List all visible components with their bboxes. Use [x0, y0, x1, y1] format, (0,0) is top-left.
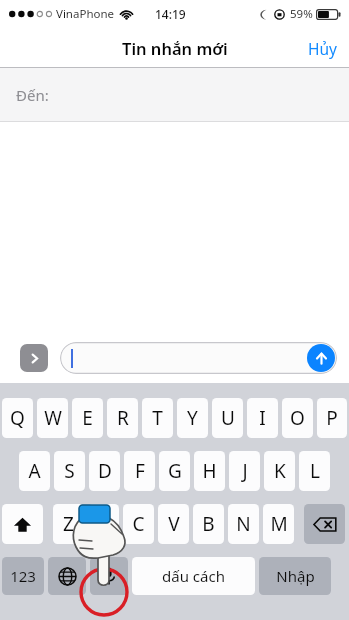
button[interactable]: I [247, 398, 278, 438]
button[interactable]: S [54, 451, 85, 491]
staticText: Đến: [16, 85, 49, 105]
button[interactable]: Shift [2, 504, 43, 544]
button[interactable]: Backspace [304, 504, 345, 544]
button[interactable]: W [37, 398, 68, 438]
button[interactable]: X [88, 504, 119, 544]
staticText: F [135, 458, 145, 484]
staticText: T [152, 405, 163, 431]
staticText: VinaPhone [56, 6, 115, 22]
staticText: 123 [10, 566, 36, 586]
staticText: W [44, 405, 62, 431]
staticText: Nhập [276, 566, 315, 586]
button[interactable]: G [159, 451, 190, 491]
staticText: dấu cách [162, 566, 225, 586]
staticText: Z [63, 511, 74, 537]
staticText: X [98, 511, 110, 537]
button[interactable]: C [123, 504, 154, 544]
button[interactable]: V [158, 504, 189, 544]
button[interactable]: Q [2, 398, 33, 438]
staticText: Tin nhắn mới [122, 37, 228, 59]
staticText: M [270, 511, 288, 537]
button[interactable]: B [193, 504, 224, 544]
staticText: R [117, 405, 129, 431]
button[interactable]: T [142, 398, 173, 438]
staticText: Q [10, 405, 25, 431]
button[interactable]: F [124, 451, 155, 491]
staticText: L [310, 458, 320, 484]
staticText: 59% [290, 6, 313, 22]
button[interactable]: J [229, 451, 260, 491]
button[interactable]: M [263, 504, 294, 544]
button[interactable]: K [264, 451, 295, 491]
staticText: Y [187, 405, 198, 431]
staticText: S [64, 458, 75, 484]
button[interactable]: L [299, 451, 330, 491]
button[interactable]: Z [53, 504, 84, 544]
button[interactable]: D [89, 451, 120, 491]
staticText: 14:19 [155, 6, 186, 22]
staticText: I [259, 405, 266, 431]
button[interactable]: Change keyboard [48, 557, 86, 595]
staticText: B [202, 511, 215, 537]
button[interactable]: Send [307, 344, 335, 372]
staticText: C [132, 511, 145, 537]
staticText: N [236, 511, 251, 537]
button[interactable]: Đến: [0, 68, 349, 122]
button[interactable]: 123 [2, 557, 44, 595]
button[interactable]: E [72, 398, 103, 438]
staticText: U [221, 405, 235, 431]
staticText: H [202, 458, 217, 484]
button[interactable]: Send [60, 342, 337, 374]
staticText: K [274, 458, 286, 484]
staticText: G [168, 458, 182, 484]
button[interactable]: Dictation [90, 557, 128, 595]
staticText: V [168, 511, 180, 537]
staticText: P [326, 405, 338, 431]
button[interactable]: A [19, 451, 50, 491]
button[interactable]: O [282, 398, 313, 438]
staticText: O [290, 405, 305, 431]
button[interactable]: U [212, 398, 243, 438]
button[interactable]: Y [177, 398, 208, 438]
button[interactable]: Hủy [296, 29, 349, 68]
staticText: E [82, 405, 93, 431]
button[interactable]: R [107, 398, 138, 438]
button[interactable]: Expand apps [20, 344, 48, 372]
button[interactable]: H [194, 451, 225, 491]
staticText: A [28, 458, 41, 484]
button[interactable]: N [228, 504, 259, 544]
staticText: J [242, 458, 248, 484]
button[interactable]: dấu cách [132, 557, 255, 595]
staticText: D [98, 458, 112, 484]
staticText: Hủy [308, 38, 337, 59]
button[interactable]: P [317, 398, 347, 438]
button[interactable]: Nhập [259, 557, 331, 595]
